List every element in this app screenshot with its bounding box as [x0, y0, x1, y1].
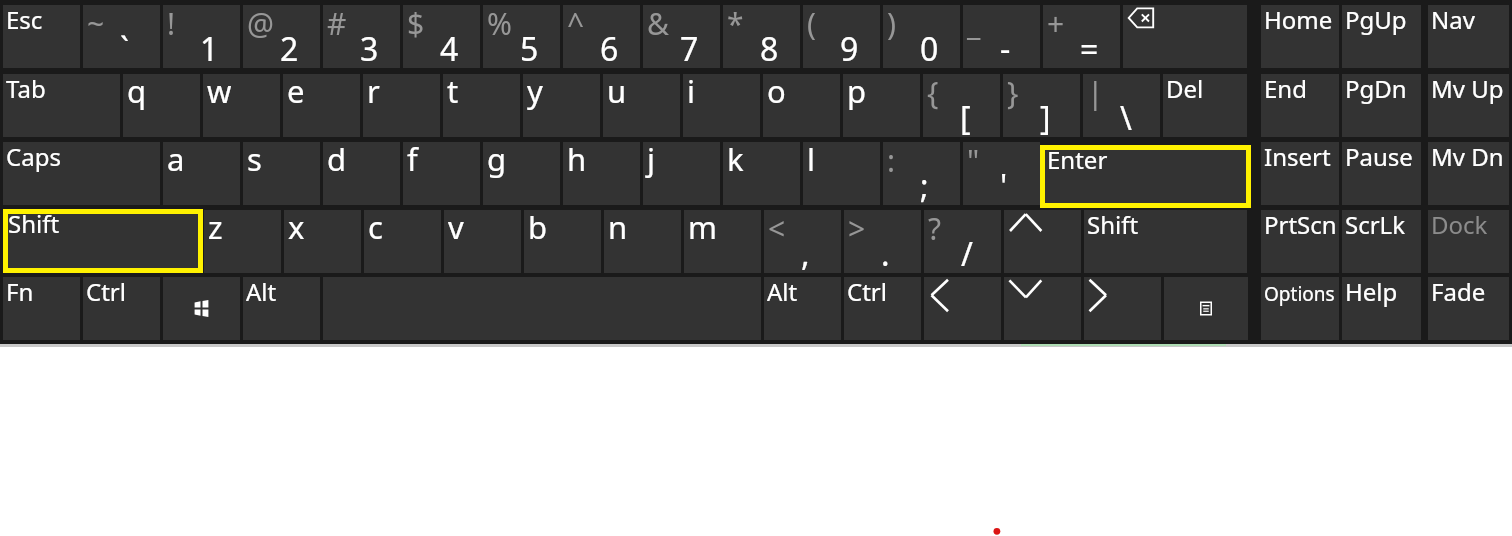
button[interactable]: f [403, 142, 480, 205]
button[interactable]: Mv Dn [1428, 142, 1509, 205]
button[interactable]: > [844, 210, 921, 273]
button[interactable]: ? [924, 210, 1001, 273]
button[interactable]: a [163, 142, 240, 205]
button[interactable]: l [803, 142, 880, 205]
button[interactable]: | [1083, 74, 1160, 137]
staticText: Home [1264, 3, 1333, 36]
button[interactable]: PgDn [1342, 74, 1421, 137]
button[interactable]: Nav [1428, 5, 1509, 68]
button[interactable]: Options [1261, 277, 1339, 340]
button[interactable]: d [323, 142, 400, 205]
staticText: 9 [840, 27, 859, 71]
button[interactable]: _ [963, 5, 1040, 68]
button[interactable]: Mv Up [1428, 74, 1509, 137]
button[interactable]: z [204, 210, 281, 273]
button[interactable]: q [123, 74, 200, 137]
staticText: Ctrl [847, 275, 887, 308]
staticText: Insert [1264, 140, 1331, 173]
button[interactable]: h [563, 142, 640, 205]
button[interactable]: m [684, 210, 761, 273]
staticText: Help [1345, 275, 1398, 308]
button[interactable]: Backspace [1123, 5, 1247, 68]
staticText: < [768, 208, 786, 249]
button[interactable]: r [363, 74, 440, 137]
button[interactable]: Up [1004, 210, 1081, 273]
button[interactable]: # [323, 5, 400, 68]
staticText: Dock [1431, 208, 1488, 241]
button[interactable]: " [963, 142, 1040, 205]
staticText: @ [247, 3, 274, 44]
button[interactable]: } [1003, 74, 1080, 137]
button[interactable]: p [843, 74, 920, 137]
button[interactable]: Pause [1342, 142, 1421, 205]
button[interactable]: Shift [3, 209, 203, 273]
button[interactable]: Menu [1164, 277, 1248, 340]
button[interactable]: Fn [3, 277, 80, 340]
staticText: i [687, 70, 695, 112]
staticText: _ [967, 3, 981, 44]
button[interactable]: < [764, 210, 841, 273]
button[interactable]: Tab [3, 74, 120, 137]
button[interactable]: Left [924, 277, 1001, 340]
button[interactable]: Windows [163, 277, 240, 340]
button[interactable]: Help [1342, 277, 1421, 340]
button[interactable]: ^ [563, 5, 640, 68]
button[interactable]: $ [403, 5, 480, 68]
staticText: 1 [200, 27, 219, 71]
button[interactable]: e [283, 74, 360, 137]
button[interactable]: Esc [3, 5, 80, 68]
button[interactable]: s [243, 142, 320, 205]
button[interactable]: * [723, 5, 800, 68]
button[interactable]: Insert [1261, 142, 1339, 205]
button[interactable]: ! [163, 5, 240, 68]
button[interactable]: + [1043, 5, 1120, 68]
button[interactable]: y [523, 74, 600, 137]
button[interactable]: Ctrl [844, 277, 921, 340]
button[interactable]: g [483, 142, 560, 205]
button[interactable]: PgUp [1342, 5, 1421, 68]
button[interactable]: Ctrl [83, 277, 160, 340]
staticText: PrtScn [1264, 208, 1337, 241]
button[interactable]: o [763, 74, 840, 137]
button[interactable]: PrtScn [1261, 210, 1339, 273]
button[interactable]: k [723, 142, 800, 205]
staticText: p [847, 70, 867, 112]
button[interactable]: j [643, 142, 720, 205]
button[interactable]: i [683, 74, 760, 137]
button[interactable]: End [1261, 74, 1339, 137]
button[interactable]: ~ [83, 5, 160, 68]
button[interactable]: { [923, 74, 1000, 137]
button[interactable]: u [603, 74, 680, 137]
staticText: Tab [6, 72, 46, 105]
button[interactable]: ) [883, 5, 960, 68]
button[interactable]: Fade [1428, 277, 1509, 340]
button[interactable]: w [203, 74, 280, 137]
button[interactable]: Home [1261, 5, 1339, 68]
button[interactable]: : [883, 142, 960, 205]
staticText: ] [1040, 96, 1051, 140]
button[interactable]: c [364, 210, 441, 273]
button[interactable]: t [443, 74, 520, 137]
button[interactable]: ScrLk [1342, 210, 1421, 273]
button[interactable]: n [604, 210, 681, 273]
button[interactable]: Dock [1428, 210, 1509, 273]
button[interactable]: Enter [1040, 145, 1251, 208]
button[interactable]: Alt [243, 277, 320, 340]
button[interactable]: x [284, 210, 361, 273]
button[interactable]: Right [1084, 277, 1161, 340]
button[interactable]: b [524, 210, 601, 273]
staticText: u [607, 70, 627, 112]
button[interactable]: Down [1004, 277, 1081, 340]
button[interactable]: Caps [3, 142, 160, 205]
button[interactable]: Del [1163, 74, 1247, 137]
button[interactable]: ( [803, 5, 880, 68]
staticText: > [848, 208, 866, 249]
button[interactable]: @ [243, 5, 320, 68]
staticText: Shift [1087, 208, 1139, 241]
button[interactable]: Shift [1084, 210, 1247, 273]
button[interactable]: Alt [764, 277, 841, 340]
button[interactable]: v [444, 210, 521, 273]
button[interactable]: % [483, 5, 560, 68]
button[interactable]: & [643, 5, 720, 68]
